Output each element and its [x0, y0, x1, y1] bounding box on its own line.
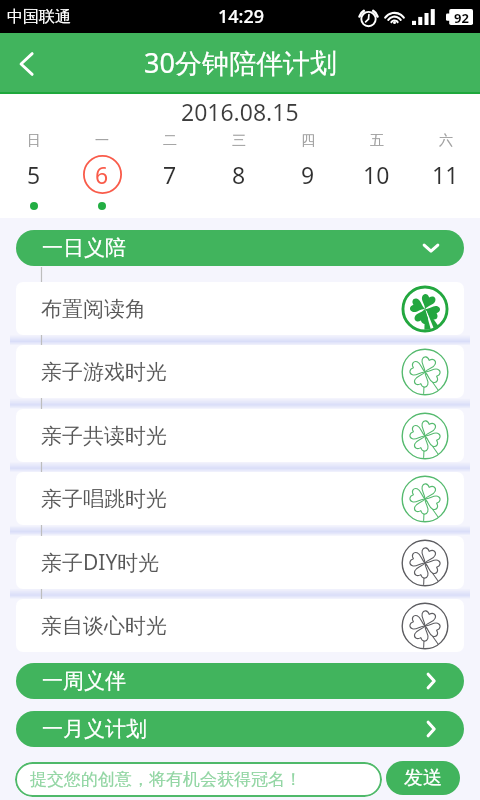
button[interactable]: 一月义计划	[16, 711, 464, 747]
button[interactable]: 7	[136, 152, 204, 196]
button[interactable]: 亲子DIY时光	[16, 536, 464, 589]
button[interactable]: 8	[204, 152, 273, 196]
button[interactable]: 提交您的创意，将有机会获得冠名！	[15, 762, 382, 797]
staticText: 亲子游戏时光	[41, 359, 167, 385]
button[interactable]: 布置阅读角	[16, 282, 464, 335]
staticText: 亲子DIY时光	[41, 548, 160, 577]
staticText: 30分钟陪伴计划	[144, 44, 337, 81]
staticText: 2016.08.15	[181, 96, 299, 126]
staticText: 10	[363, 159, 390, 190]
button[interactable]: 亲子游戏时光	[16, 345, 464, 398]
staticText: 亲子共读时光	[41, 423, 167, 449]
button[interactable]: 9	[273, 152, 342, 196]
staticText: 中国联通	[7, 7, 71, 27]
button[interactable]: 6	[68, 152, 136, 196]
staticText: 一	[95, 132, 109, 150]
staticText: 14:29	[218, 4, 265, 29]
staticText: 6	[95, 159, 109, 190]
staticText: 一日义陪	[42, 235, 126, 261]
staticText: 亲自谈心时光	[41, 613, 167, 639]
staticText: 亲子唱跳时光	[41, 486, 167, 512]
button[interactable]: 5	[0, 152, 68, 196]
staticText: 7	[163, 159, 177, 190]
staticText: 四	[301, 132, 315, 150]
staticText: 二	[163, 132, 177, 150]
button[interactable]: 11	[411, 152, 480, 196]
button[interactable]: 一日义陪	[16, 230, 464, 266]
staticText: 一周义伴	[42, 668, 126, 694]
staticText: 六	[439, 132, 453, 150]
button[interactable]: 亲子唱跳时光	[16, 472, 464, 525]
staticText: 一月义计划	[42, 716, 147, 742]
button[interactable]: 亲自谈心时光	[16, 599, 464, 652]
staticText: 日	[27, 132, 41, 150]
staticText: 三	[232, 132, 246, 150]
staticText: 布置阅读角	[41, 296, 146, 322]
button[interactable]: Back	[0, 33, 58, 94]
staticText: 5	[27, 159, 41, 190]
button[interactable]: 一周义伴	[16, 663, 464, 699]
staticText: 9	[301, 159, 315, 190]
button[interactable]: 亲子共读时光	[16, 409, 464, 462]
staticText: 11	[432, 159, 459, 190]
staticText: 提交您的创意，将有机会获得冠名！	[30, 769, 302, 790]
button[interactable]: 发送	[386, 761, 460, 795]
staticText: 8	[232, 159, 246, 190]
staticText: 发送	[404, 766, 442, 790]
button[interactable]: 10	[342, 152, 411, 196]
staticText: 92	[454, 9, 469, 25]
staticText: 五	[370, 132, 384, 150]
